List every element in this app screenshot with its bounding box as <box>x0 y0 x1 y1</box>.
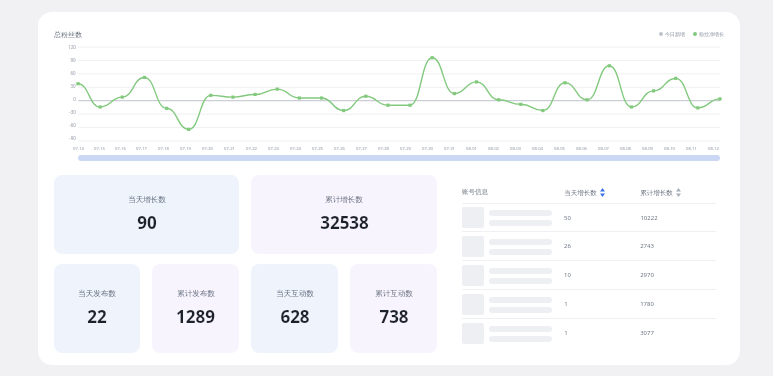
button[interactable]: 50 <box>462 204 716 231</box>
staticText: 08-12 <box>708 146 719 152</box>
staticText: 1 <box>564 329 568 337</box>
staticText: 3077 <box>640 329 654 337</box>
staticText: 粉丝净增长 <box>699 31 724 37</box>
button[interactable]: Sort <box>600 188 605 197</box>
staticText: 90 <box>137 211 157 234</box>
staticText: 当天互动数 <box>276 289 314 298</box>
staticText: 账号信息 <box>462 188 488 196</box>
staticText: 32538 <box>320 211 369 234</box>
staticText: -60 <box>69 122 76 128</box>
staticText: 07-26 <box>334 146 345 152</box>
staticText: 累计发布数 <box>177 289 215 298</box>
staticText: 1 <box>564 300 568 308</box>
button[interactable]: 26 <box>462 232 716 260</box>
staticText: 07-22 <box>246 146 257 152</box>
staticText: 当天增长数 <box>564 189 597 197</box>
staticText: 07-30 <box>422 146 433 152</box>
staticText: 08-03 <box>510 146 521 152</box>
staticText: 10222 <box>640 214 658 222</box>
staticText: 07-23 <box>268 146 279 152</box>
button[interactable]: 当天增长数 <box>54 175 239 254</box>
staticText: 90 <box>70 57 76 63</box>
staticText: 07-28 <box>378 146 389 152</box>
button[interactable]: 1 <box>462 290 716 318</box>
staticText: 08-04 <box>532 146 543 152</box>
button[interactable]: 累计发布数 <box>152 264 239 353</box>
staticText: 当天增长数 <box>128 195 166 204</box>
staticText: 07-25 <box>312 146 323 152</box>
staticText: 30 <box>70 83 76 89</box>
staticText: 07-31 <box>444 146 455 152</box>
staticText: 07-19 <box>180 146 191 152</box>
button[interactable]: 累计互动数 <box>350 264 437 353</box>
staticText: 累计增长数 <box>325 195 363 204</box>
staticText: 120 <box>68 44 76 50</box>
staticText: -30 <box>69 109 76 115</box>
staticText: 50 <box>564 214 571 222</box>
staticText: 当天发布数 <box>78 289 116 298</box>
staticText: 08-02 <box>488 146 499 152</box>
staticText: 628 <box>280 305 310 328</box>
staticText: 22 <box>87 305 107 328</box>
staticText: 07-21 <box>224 146 235 152</box>
button[interactable]: 1 <box>462 319 716 347</box>
staticText: 08-05 <box>554 146 565 152</box>
staticText: 07-16 <box>115 146 126 152</box>
staticText: 1780 <box>640 300 654 308</box>
staticText: 08-10 <box>664 146 675 152</box>
staticText: 07-27 <box>356 146 367 152</box>
staticText: 总粉丝数 <box>54 30 82 39</box>
button[interactable]: Sort <box>676 188 681 197</box>
staticText: 08-08 <box>620 146 631 152</box>
staticText: 07-18 <box>158 146 169 152</box>
staticText: 08-11 <box>686 146 697 152</box>
button[interactable]: 当天互动数 <box>251 264 338 353</box>
staticText: 1289 <box>176 305 215 328</box>
staticText: 累计增长数 <box>640 189 673 197</box>
staticText: 60 <box>70 70 76 76</box>
staticText: 08-01 <box>466 146 477 152</box>
staticText: 累计互动数 <box>375 289 413 298</box>
button[interactable]: 当天发布数 <box>54 264 140 353</box>
staticText: 738 <box>379 305 409 328</box>
staticText: -90 <box>69 135 76 141</box>
button[interactable]: 累计增长数 <box>251 175 437 254</box>
staticText: 2970 <box>640 271 654 279</box>
staticText: 07-14 <box>73 146 84 152</box>
staticText: 26 <box>564 242 571 250</box>
staticText: 0 <box>73 96 76 102</box>
staticText: 08-07 <box>598 146 609 152</box>
staticText: 07-17 <box>136 146 147 152</box>
staticText: 10 <box>564 271 571 279</box>
staticText: 07-15 <box>94 146 105 152</box>
staticText: 07-20 <box>202 146 213 152</box>
staticText: 今日新增 <box>665 31 685 37</box>
button[interactable]: 10 <box>462 261 716 289</box>
staticText: 2743 <box>640 242 654 250</box>
staticText: 08-09 <box>642 146 653 152</box>
staticText: 07-24 <box>290 146 301 152</box>
staticText: 08-06 <box>576 146 587 152</box>
staticText: 07-29 <box>400 146 411 152</box>
